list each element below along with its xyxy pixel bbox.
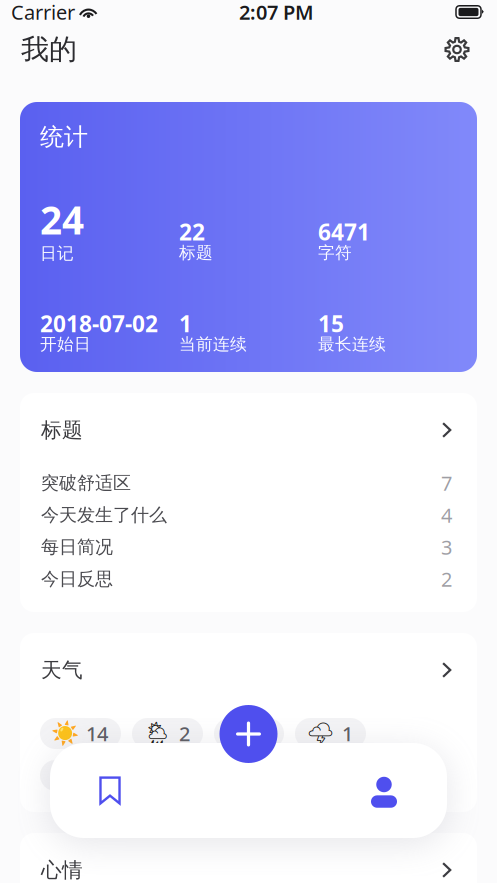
staticText: 标题 <box>41 417 83 443</box>
button[interactable]: 新建 <box>219 705 277 763</box>
staticText: 今天发生了什么 <box>41 504 167 526</box>
button[interactable]: 设置 <box>435 27 479 71</box>
button[interactable]: 每日简况 <box>20 531 477 563</box>
staticText: ⛅️ <box>225 721 253 746</box>
staticText: 最长连续 <box>318 334 386 355</box>
staticText: 日记 <box>40 243 74 264</box>
staticText: Carrier <box>11 0 75 25</box>
staticText: 6471 <box>318 216 370 247</box>
staticText: 2 <box>179 720 190 747</box>
staticText: 今日反思 <box>41 568 113 590</box>
staticText: 1 <box>179 308 192 339</box>
staticText: 7 <box>441 470 452 496</box>
button[interactable]: 天气 <box>20 633 477 707</box>
staticText: 当前连续 <box>179 334 247 355</box>
staticText: 1 <box>260 720 271 747</box>
staticText: 1 <box>342 720 353 747</box>
staticText: 2 <box>441 566 452 592</box>
staticText: 字符 <box>318 242 352 263</box>
staticText: 14 <box>86 720 108 747</box>
staticText: 🌦 <box>143 721 172 746</box>
staticText: 22 <box>179 216 205 247</box>
staticText: 3 <box>441 534 452 560</box>
button[interactable]: 心情 <box>20 833 477 883</box>
staticText: 我的 <box>21 32 77 67</box>
staticText: 15 <box>318 308 344 339</box>
staticText: 天气 <box>41 657 83 683</box>
staticText: 4 <box>441 502 452 528</box>
button[interactable]: 我的 <box>346 743 422 838</box>
staticText: 统计 <box>40 122 88 152</box>
staticText: 2018-07-02 <box>40 308 158 339</box>
staticText: 标题 <box>179 242 213 263</box>
staticText: 2:07 PM <box>239 0 314 25</box>
button[interactable]: 标题 <box>20 393 477 467</box>
staticText: 24 <box>40 193 84 246</box>
button[interactable]: 突破舒适区 <box>20 467 477 499</box>
staticText: 每日简况 <box>41 536 113 558</box>
button[interactable]: 书签 <box>72 743 148 838</box>
staticText: 开始日 <box>40 334 91 355</box>
staticText: 🌩 <box>306 721 335 746</box>
staticText: ☀️ <box>51 721 79 746</box>
button[interactable]: 今日反思 <box>20 563 477 595</box>
staticText: 心情 <box>41 857 83 883</box>
button[interactable]: 今天发生了什么 <box>20 499 477 531</box>
staticText: 突破舒适区 <box>41 472 131 494</box>
